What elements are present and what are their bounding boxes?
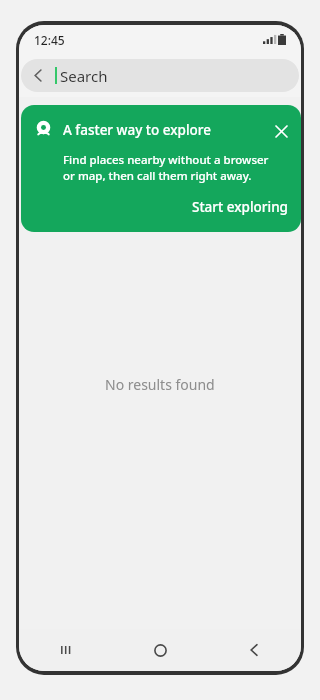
- button[interactable]: Start exploring: [178, 183, 301, 232]
- button[interactable]: Back: [21, 59, 299, 92]
- button[interactable]: Back: [21, 59, 55, 92]
- button[interactable]: A faster way to explore: [21, 105, 301, 232]
- staticText: Search: [60, 66, 108, 86]
- button[interactable]: Back: [207, 629, 301, 671]
- staticText: A faster way to explore: [63, 121, 270, 139]
- staticText: Find places nearby without a browser or …: [63, 152, 269, 183]
- staticText: 12:45: [34, 32, 65, 48]
- button[interactable]: Close: [270, 120, 292, 142]
- button[interactable]: Recents: [19, 629, 113, 671]
- button[interactable]: Home: [113, 629, 207, 671]
- staticText: No results found: [105, 375, 215, 394]
